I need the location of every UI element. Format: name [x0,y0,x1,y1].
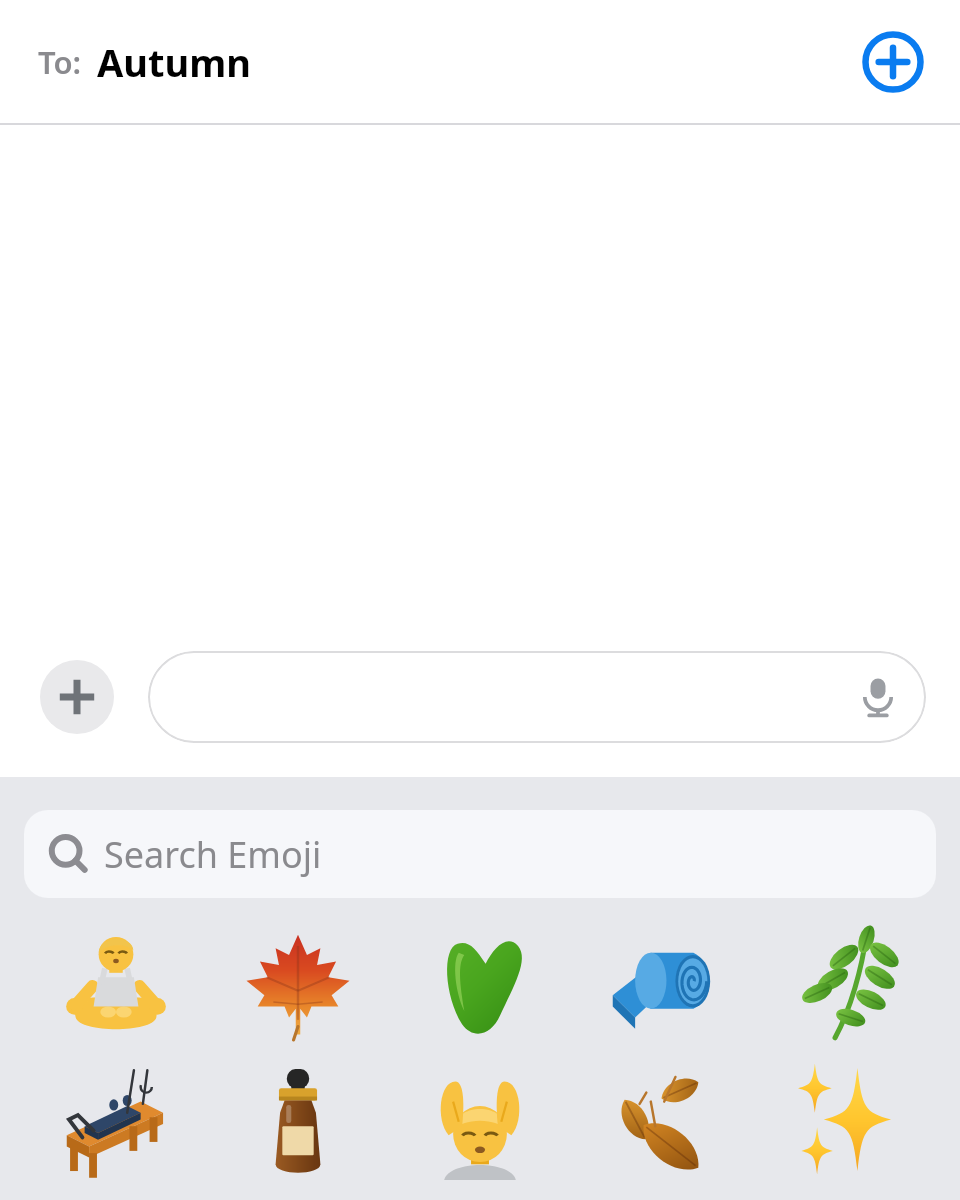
button[interactable]: Maple leaf [232,918,364,1050]
button[interactable]: Pilates reformer [50,1058,182,1190]
button[interactable]: Search Emoji [24,810,936,898]
button[interactable]: Yoga mat [596,918,728,1050]
button[interactable]: Herb [778,918,910,1050]
staticText: Search Emoji [104,830,322,879]
button[interactable]: Add contact [856,25,930,99]
button[interactable]: Attach [40,660,114,734]
button[interactable]: Dictate [148,651,926,743]
button[interactable]: Sparkles [778,1058,910,1190]
button[interactable]: Dictate [856,675,900,719]
button[interactable]: Fallen leaves [596,1058,728,1190]
button[interactable]: Person getting massage [414,1058,546,1190]
button[interactable]: Green heart [414,918,546,1050]
button[interactable]: Dropper bottle [232,1058,364,1190]
staticText: To: [38,41,82,83]
button[interactable]: Person in lotus position [50,918,182,1050]
staticText: Autumn [97,36,251,88]
